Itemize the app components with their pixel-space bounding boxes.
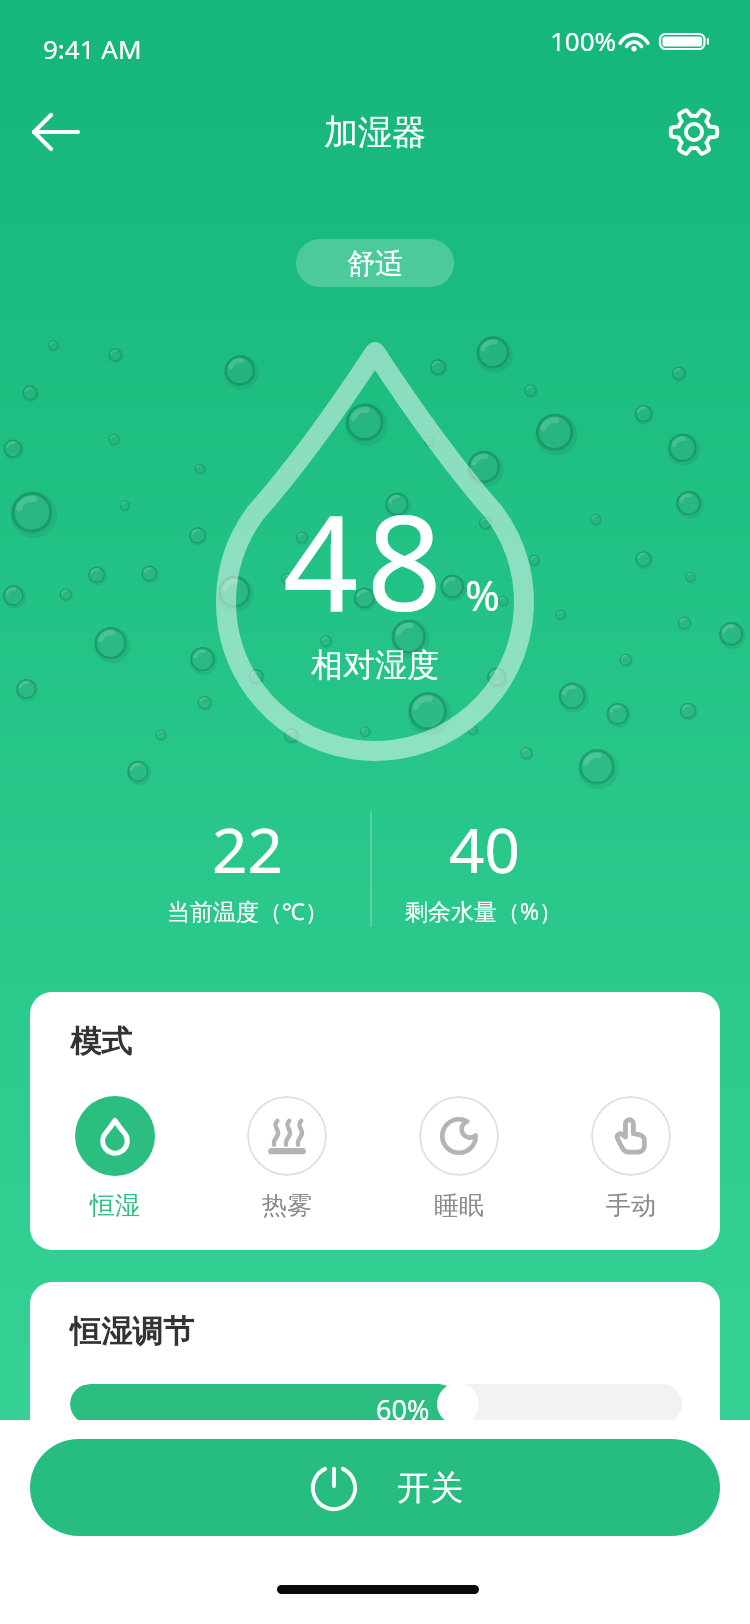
- staticText: 当前温度（℃）: [167, 895, 328, 926]
- staticText: 模式: [70, 1022, 132, 1061]
- staticText: 开关: [397, 1467, 463, 1509]
- staticText: 剩余水量（%）: [405, 895, 563, 926]
- staticText: 舒适: [347, 246, 403, 281]
- staticText: 热雾: [262, 1190, 312, 1221]
- staticText: 恒湿调节: [70, 1312, 194, 1351]
- staticText: 9:41 AM: [43, 31, 142, 66]
- button[interactable]: 开关: [30, 1439, 720, 1536]
- staticText: 60%: [376, 1391, 430, 1420]
- staticText: 睡眠: [434, 1190, 484, 1221]
- button[interactable]: Settings: [650, 88, 738, 176]
- staticText: 48: [283, 470, 451, 650]
- staticText: 相对湿度: [311, 645, 439, 685]
- button[interactable]: 手动: [566, 1096, 696, 1221]
- staticText: 100%: [550, 23, 617, 58]
- staticText: 22: [212, 807, 283, 891]
- staticText: 恒湿: [90, 1190, 140, 1221]
- staticText: 手动: [606, 1190, 656, 1221]
- staticText: 加湿器: [324, 111, 426, 154]
- staticText: 40: [449, 807, 520, 891]
- button[interactable]: 舒适: [296, 239, 454, 287]
- button[interactable]: 恒湿: [50, 1096, 180, 1221]
- button[interactable]: 60%: [70, 1384, 682, 1420]
- button[interactable]: 热雾: [222, 1096, 352, 1221]
- staticText: %: [465, 566, 500, 623]
- button[interactable]: 睡眠: [394, 1096, 524, 1221]
- button[interactable]: Back: [12, 88, 100, 176]
